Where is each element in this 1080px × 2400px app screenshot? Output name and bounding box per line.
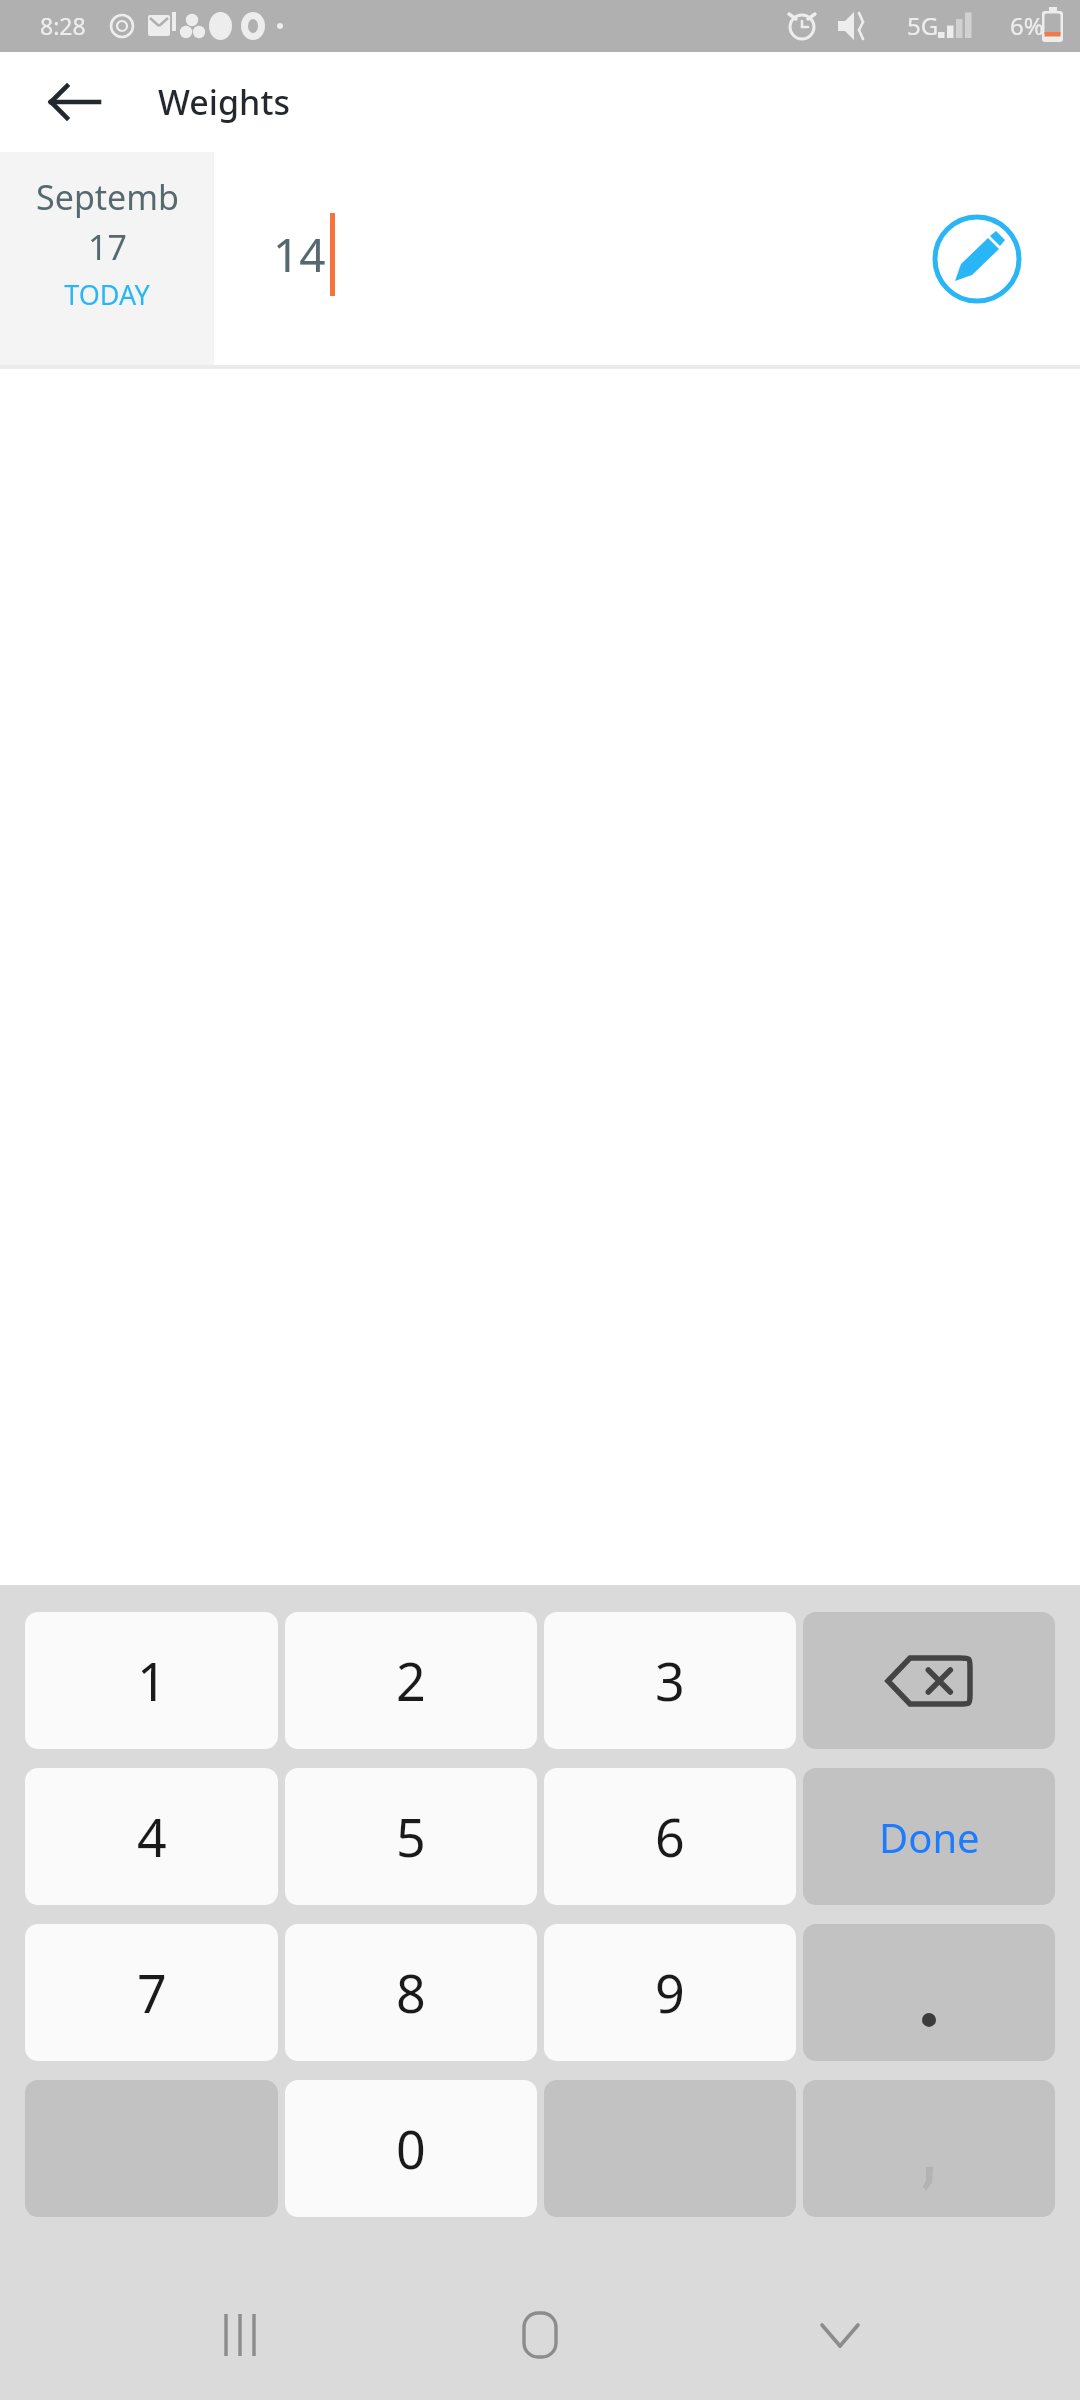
button[interactable]: Done	[803, 1768, 1055, 1905]
button[interactable]: Back	[28, 55, 122, 149]
staticText: 4	[137, 1801, 167, 1872]
staticText: Weights	[158, 79, 290, 125]
staticText: 6%	[1010, 9, 1044, 42]
button[interactable]: Hide keyboard	[780, 2275, 900, 2395]
button[interactable]: 6	[544, 1768, 796, 1905]
staticText: 5	[396, 1801, 426, 1872]
button[interactable]: 7	[25, 1924, 278, 2061]
staticText: 6	[655, 1801, 685, 1872]
button[interactable]	[803, 1924, 1055, 2061]
staticText: Done	[879, 1810, 980, 1864]
button[interactable]: Backspace	[803, 1612, 1055, 1749]
staticText: Septemb	[36, 174, 179, 220]
staticText: 5G	[907, 9, 939, 42]
staticText: 14	[273, 223, 326, 286]
button[interactable]: Edit	[929, 211, 1025, 307]
button[interactable]: Recent apps	[180, 2275, 300, 2395]
button[interactable]: 2	[285, 1612, 537, 1749]
button[interactable]: 9	[544, 1924, 796, 2061]
staticText: 8	[396, 1957, 426, 2028]
button[interactable]: 0	[285, 2080, 537, 2217]
staticText: 1	[137, 1645, 167, 1716]
button[interactable]: 14	[214, 152, 1080, 365]
button[interactable]: Septemb	[0, 152, 214, 365]
staticText: 9	[655, 1957, 685, 2028]
button[interactable]: 3	[544, 1612, 796, 1749]
button[interactable]: 5	[285, 1768, 537, 1905]
staticText: TODAY	[64, 276, 150, 313]
staticText: 2	[396, 1645, 426, 1716]
button[interactable]: Home	[480, 2275, 600, 2395]
button[interactable]: 4	[25, 1768, 278, 1905]
staticText: 0	[396, 2113, 426, 2184]
button[interactable]: 8	[285, 1924, 537, 2061]
staticText: 8:28	[40, 10, 86, 41]
staticText: 7	[137, 1957, 167, 2028]
button[interactable]: 1	[25, 1612, 278, 1749]
staticText: 3	[655, 1645, 685, 1716]
staticText: 17	[88, 224, 127, 270]
